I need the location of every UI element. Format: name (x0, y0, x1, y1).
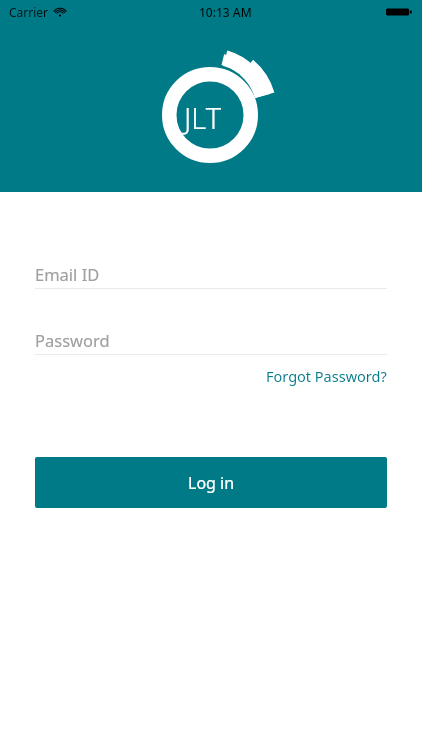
staticText: JLT (184, 98, 222, 137)
staticText: Carrier (9, 4, 49, 20)
button[interactable]: Log in (35, 457, 387, 508)
staticText: Forgot Password? (266, 366, 387, 386)
other: Wi-Fi (54, 6, 66, 18)
staticText: Email ID (35, 263, 100, 285)
button[interactable]: Email ID (35, 260, 387, 289)
staticText: Password (35, 329, 110, 351)
button[interactable]: Forgot Password? (266, 363, 387, 389)
button[interactable]: Password (35, 326, 387, 355)
staticText: Log in (188, 472, 235, 494)
staticText: 10:13 AM (199, 4, 252, 20)
